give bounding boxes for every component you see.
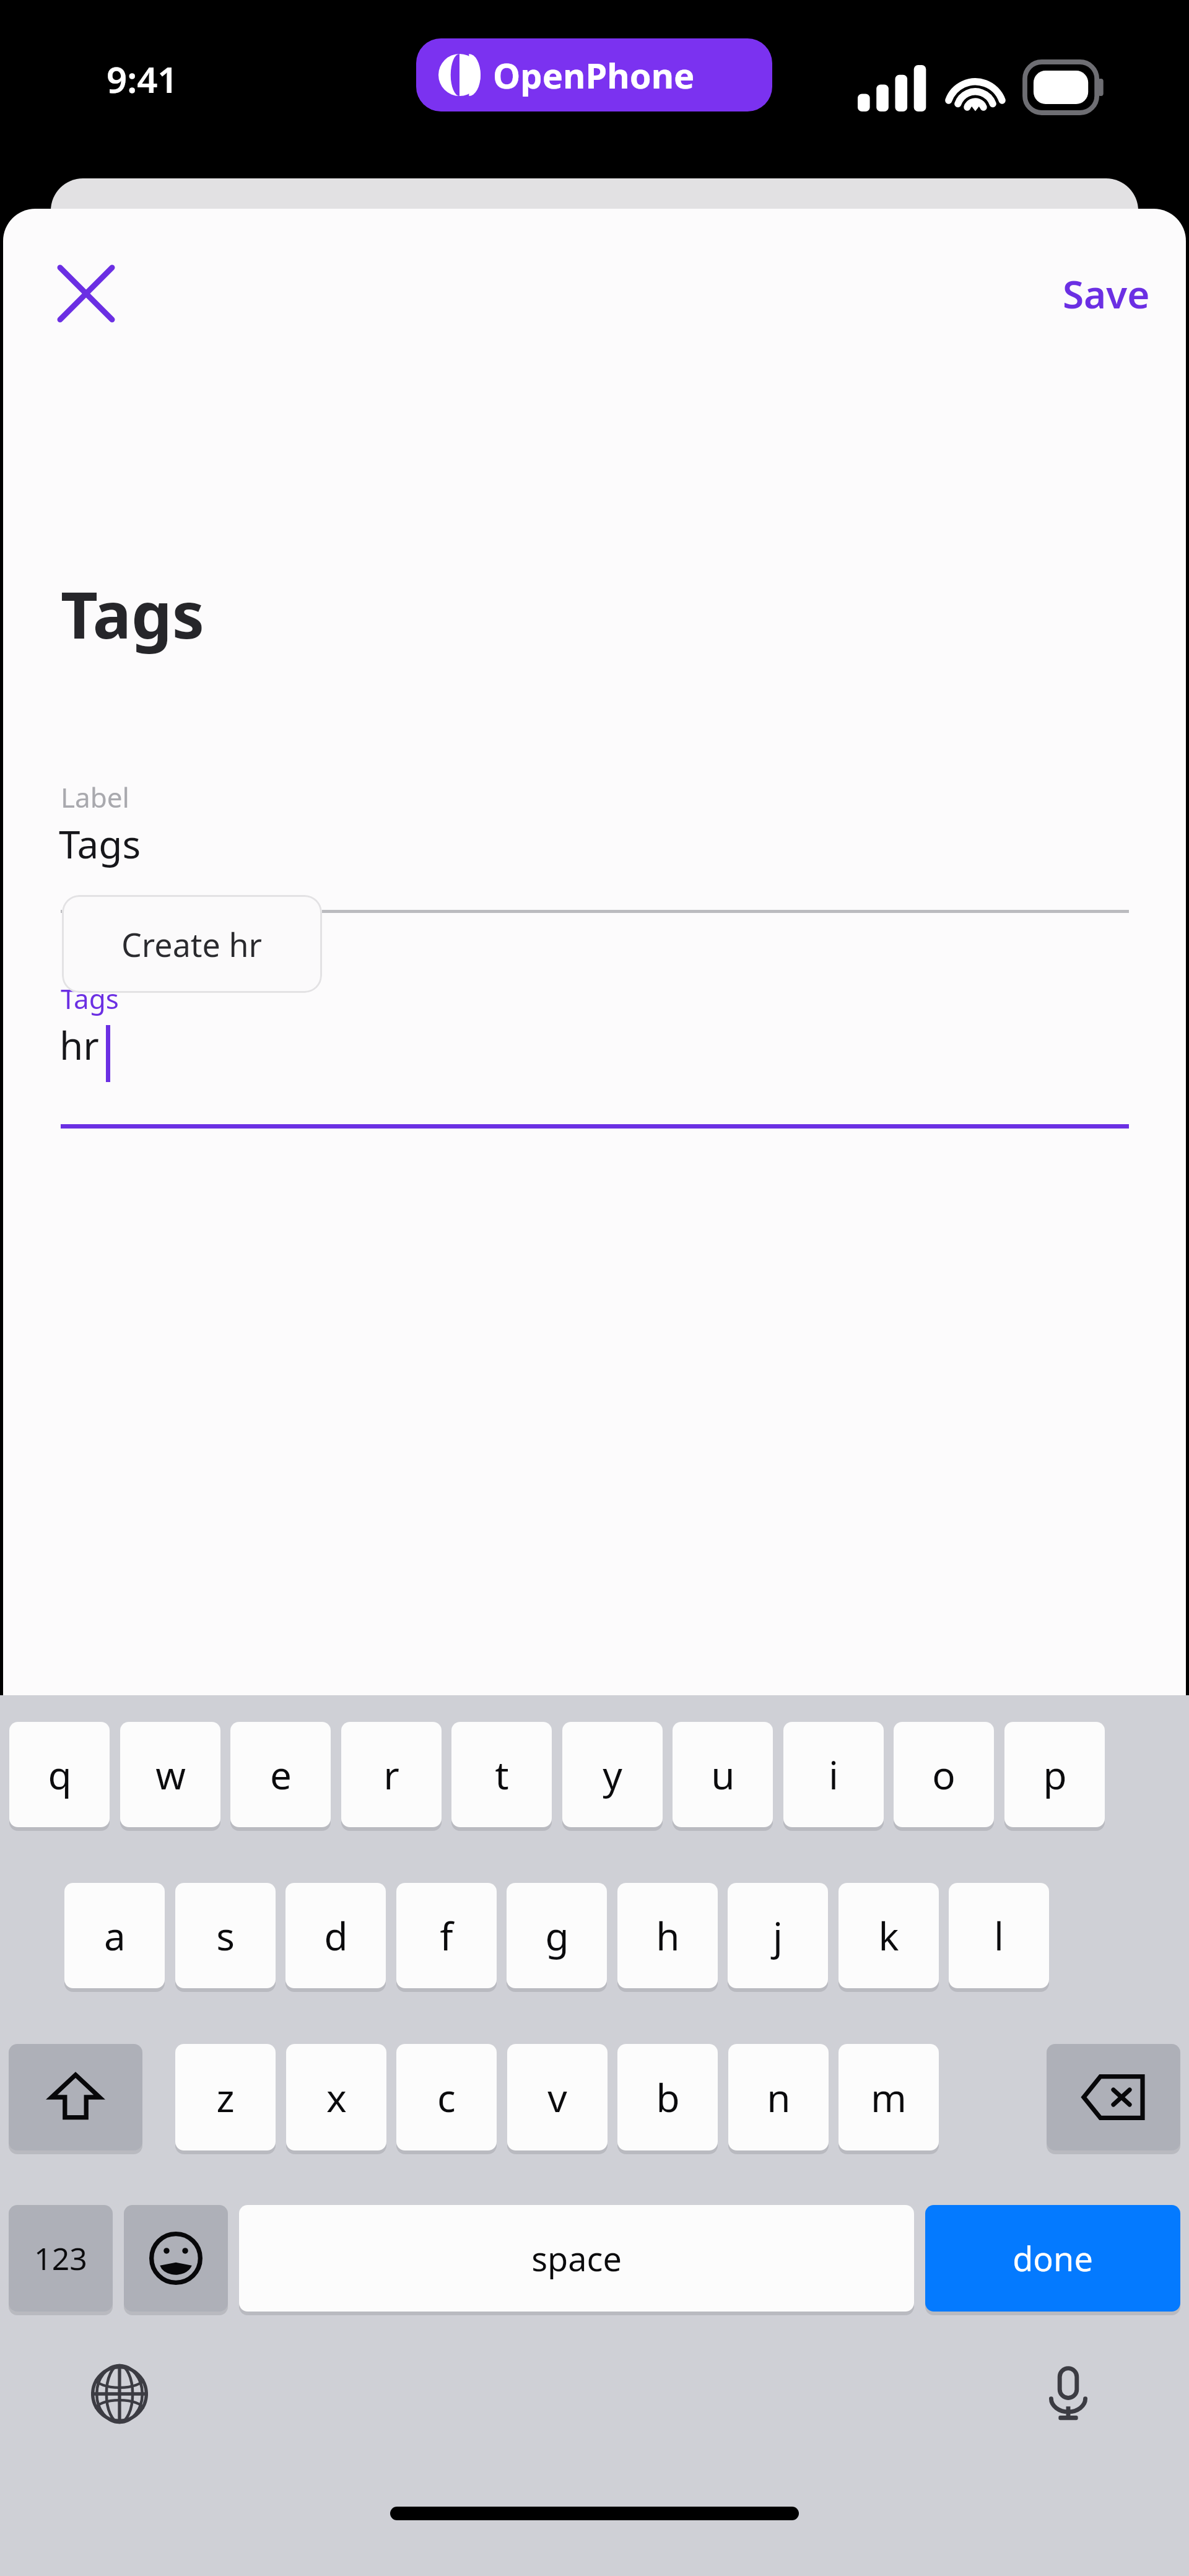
button[interactable]: r <box>341 1722 442 1827</box>
button[interactable]: m <box>838 2044 939 2150</box>
button[interactable]: Shift <box>9 2044 142 2150</box>
staticText: f <box>440 1910 453 1962</box>
staticText: n <box>767 2071 791 2123</box>
staticText: o <box>932 1749 956 1801</box>
button[interactable]: Switch keyboard language <box>79 2354 160 2434</box>
button[interactable]: b <box>617 2044 718 2150</box>
staticText: Save <box>1063 268 1150 320</box>
button[interactable]: k <box>838 1883 939 1988</box>
button[interactable]: Emoji <box>124 2205 228 2312</box>
button[interactable]: l <box>949 1883 1049 1988</box>
button[interactable]: h <box>617 1883 718 1988</box>
button[interactable]: j <box>728 1883 828 1988</box>
staticText: t <box>495 1749 509 1801</box>
button[interactable]: w <box>120 1722 220 1827</box>
staticText: g <box>545 1910 569 1962</box>
button[interactable]: z <box>175 2044 276 2150</box>
button[interactable]: x <box>286 2044 386 2150</box>
button[interactable]: space <box>239 2205 914 2312</box>
button[interactable]: Label <box>61 779 1129 918</box>
staticText: c <box>437 2071 456 2123</box>
staticText: 123 <box>34 2237 87 2279</box>
staticText: u <box>711 1749 735 1801</box>
staticText: b <box>656 2071 680 2123</box>
staticText: v <box>547 2071 567 2123</box>
button[interactable]: q <box>9 1722 110 1827</box>
staticText: Tags <box>59 818 141 870</box>
staticText: r <box>383 1749 399 1801</box>
button[interactable]: u <box>673 1722 773 1827</box>
staticText: Tags <box>61 570 204 658</box>
staticText: q <box>48 1749 72 1801</box>
button[interactable]: Dictate <box>1028 2354 1108 2434</box>
staticText: hr <box>59 1019 99 1071</box>
button[interactable]: o <box>894 1722 994 1827</box>
button[interactable]: 123 <box>9 2205 113 2312</box>
button[interactable]: n <box>728 2044 829 2150</box>
button[interactable]: OpenPhone <box>416 38 772 111</box>
staticText: l <box>994 1910 1004 1962</box>
button[interactable]: Close <box>42 250 130 338</box>
button[interactable]: Tags <box>61 980 1129 1119</box>
staticText: Label <box>61 779 129 816</box>
button[interactable]: Save <box>994 250 1150 338</box>
button[interactable]: v <box>507 2044 608 2150</box>
staticText: j <box>773 1910 783 1962</box>
staticText: done <box>1013 2235 1093 2281</box>
staticText: k <box>878 1910 899 1962</box>
button[interactable]: i <box>783 1722 884 1827</box>
button[interactable]: t <box>451 1722 552 1827</box>
button[interactable]: Backspace <box>1047 2044 1180 2150</box>
staticText: d <box>324 1910 348 1962</box>
staticText: Tags <box>61 980 119 1017</box>
staticText: z <box>216 2071 235 2123</box>
staticText: a <box>104 1910 126 1962</box>
staticText: s <box>216 1910 235 1962</box>
button[interactable]: p <box>1004 1722 1105 1827</box>
button[interactable]: done <box>925 2205 1180 2312</box>
button[interactable]: Create hr <box>62 895 322 993</box>
staticText: x <box>326 2071 347 2123</box>
button[interactable]: d <box>285 1883 386 1988</box>
staticText: i <box>829 1749 838 1801</box>
button[interactable]: g <box>507 1883 607 1988</box>
staticText: Create hr <box>121 922 263 966</box>
staticText: e <box>270 1749 292 1801</box>
staticText: h <box>656 1910 680 1962</box>
button[interactable]: e <box>230 1722 331 1827</box>
staticText: y <box>603 1749 622 1801</box>
staticText: space <box>531 2235 622 2281</box>
staticText: w <box>155 1749 186 1801</box>
button[interactable]: c <box>396 2044 497 2150</box>
staticText: m <box>871 2071 907 2123</box>
staticText: p <box>1043 1749 1067 1801</box>
button[interactable]: a <box>64 1883 165 1988</box>
staticText: 9:41 <box>107 55 178 103</box>
button[interactable]: y <box>562 1722 663 1827</box>
button[interactable]: s <box>175 1883 276 1988</box>
button[interactable]: f <box>396 1883 497 1988</box>
staticText: OpenPhone <box>493 51 695 98</box>
